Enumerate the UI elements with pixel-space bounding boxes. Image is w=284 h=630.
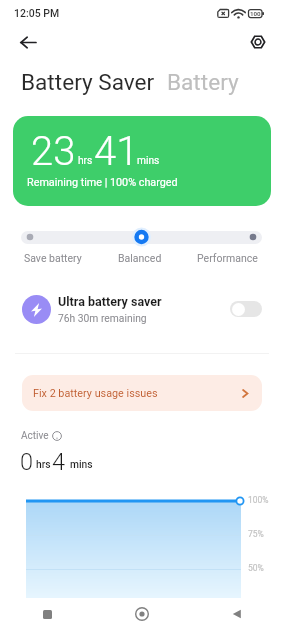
staticText: 76h 30m remaining: [58, 312, 147, 324]
staticText: Fix 2 battery usage issues: [33, 387, 158, 400]
button[interactable]: Battery mode: [21, 231, 262, 244]
staticText: mins: [70, 458, 93, 470]
button[interactable]: Back: [189, 598, 284, 630]
staticText: Battery Saver: [21, 69, 155, 95]
staticText: 75%: [248, 529, 264, 539]
staticText: 0: [20, 448, 34, 476]
staticText: 4: [52, 448, 66, 476]
staticText: hrs: [36, 458, 51, 470]
staticText: Save battery: [24, 252, 82, 264]
button[interactable]: Ultra battery saver: [0, 288, 284, 330]
staticText: 50%: [248, 563, 264, 573]
staticText: Battery: [167, 69, 239, 95]
staticText: 100: [250, 10, 261, 17]
staticText: Balanced: [118, 252, 162, 264]
button[interactable]: Home: [94, 598, 189, 630]
staticText: 100%: [248, 495, 269, 505]
button[interactable]: Recents: [0, 598, 94, 630]
staticText: 12:05 PM: [14, 7, 60, 19]
staticText: 23: [31, 128, 76, 175]
staticText: Active: [21, 430, 49, 442]
button[interactable]: 23: [13, 116, 271, 206]
button[interactable]: Back: [10, 24, 46, 60]
button[interactable]: Settings: [240, 24, 276, 60]
staticText: Performance: [197, 252, 258, 264]
staticText: Ultra battery saver: [58, 294, 162, 309]
button[interactable]: Fix 2 battery usage issues: [22, 375, 262, 411]
staticText: mins: [137, 155, 160, 167]
staticText: 41: [94, 128, 139, 175]
button[interactable]: Ultra battery saver toggle: [230, 301, 262, 317]
staticText: hrs: [78, 155, 93, 167]
staticText: Remaining time | 100% charged: [27, 176, 178, 189]
